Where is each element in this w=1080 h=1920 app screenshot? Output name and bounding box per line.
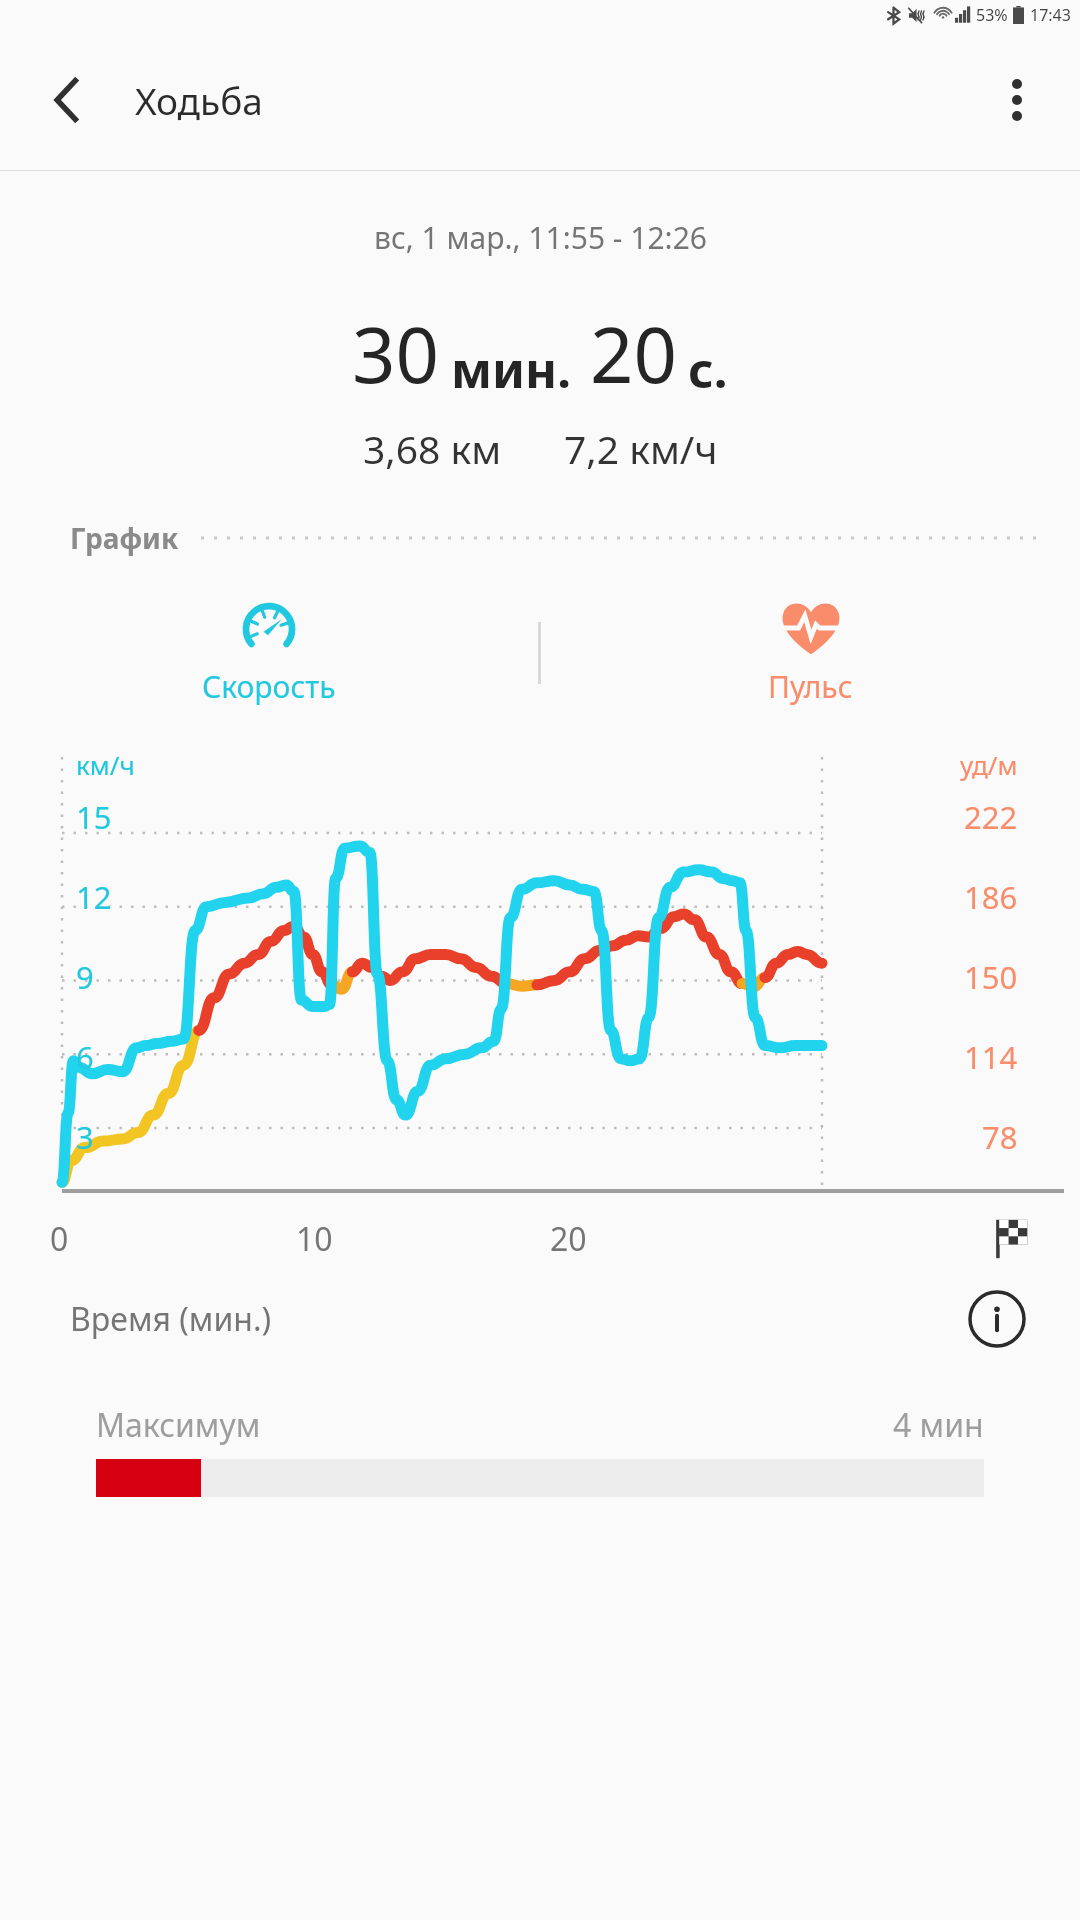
staticText: 20 [550,1217,587,1261]
staticText: 150 [964,956,1018,998]
staticText: 3 [76,1116,94,1158]
staticText: 9 [76,956,94,998]
staticText: 114 [964,1036,1018,1078]
button[interactable]: Информация [964,1286,1030,1352]
staticText: Пульс [768,666,853,707]
staticText: 222 [964,796,1018,838]
staticText: км/ч [76,747,135,782]
staticText: с. [688,336,728,403]
staticText: 53% [976,4,1008,26]
button[interactable]: Скорость [0,583,538,723]
staticText: 0 [50,1217,69,1261]
staticText: Время (мин.) [70,1297,272,1341]
staticText: 7,2 км/ч [564,422,718,475]
staticText: 20 [590,302,677,406]
staticText: 12 [76,876,112,918]
staticText: Скорость [202,666,336,707]
staticText: 10 [296,1217,333,1261]
staticText: мин. [451,336,571,403]
staticText: 6 [76,1036,94,1078]
staticText: 17:43 [1030,4,1071,26]
staticText: 78 [982,1116,1018,1158]
staticText: Ходьба [135,75,263,125]
staticText: 15 [76,796,112,838]
staticText: 30 [352,302,439,406]
staticText: уд/м [960,747,1018,782]
staticText: 3,68 км [363,422,502,475]
staticText: 4 мин [893,1403,984,1447]
staticText: Максимум [96,1403,261,1447]
staticText: вс, 1 мар., 11:55 - 12:26 [374,217,707,258]
button[interactable]: Ещё [984,67,1050,133]
staticText: График [70,519,179,557]
staticText: 186 [964,876,1018,918]
button[interactable]: Назад [38,71,96,129]
button[interactable]: Пульс [541,583,1080,723]
